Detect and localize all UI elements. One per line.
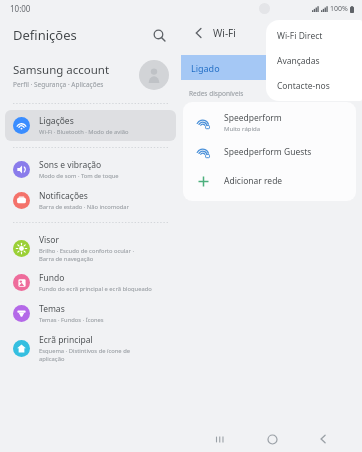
button[interactable]: Fundo <box>5 267 176 298</box>
staticText: Sons e vibração <box>39 159 102 171</box>
staticText: Visor <box>39 234 60 246</box>
button[interactable]: Speedperform Guests <box>183 137 356 166</box>
staticText: Definições <box>13 26 77 44</box>
staticText: Wi-Fi <box>213 26 236 40</box>
button[interactable]: Search <box>147 23 171 47</box>
button[interactable]: Ligado <box>181 55 357 80</box>
staticText: 10:00 <box>10 3 31 14</box>
staticText: Temas · Fundos · Ícones <box>39 316 104 324</box>
staticText: Ligado <box>191 62 220 74</box>
staticText: Esquema · Distintivos de ícone de <box>39 347 130 355</box>
staticText: Muito rápida <box>224 125 261 133</box>
staticText: Barra de estado · Não incomodar <box>39 203 130 211</box>
staticText: Modo de som · Tom de toque <box>39 172 119 180</box>
staticText: Notificações <box>39 190 88 202</box>
staticText: Avançadas <box>277 55 320 67</box>
staticText: Speedperform Guests <box>224 146 312 158</box>
button[interactable]: Ecrã principal <box>5 329 176 367</box>
button[interactable]: Temas <box>5 298 176 329</box>
staticText: Speedperform <box>224 112 282 124</box>
button[interactable]: Home <box>259 426 285 452</box>
button[interactable]: Visor <box>5 229 176 267</box>
staticText: Wi-Fi · Bluetooth · Modo de avião <box>39 128 129 136</box>
button[interactable]: Wi-Fi Direct <box>266 23 362 48</box>
staticText: aplicação <box>39 355 65 363</box>
button[interactable]: Speedperform <box>183 108 356 137</box>
button[interactable]: Avançadas <box>266 48 362 73</box>
staticText: Wi-Fi Direct <box>277 30 323 42</box>
button[interactable]: Samsung account <box>0 53 181 97</box>
button[interactable]: Contacte-nos <box>266 73 362 98</box>
staticText: Samsung account <box>13 62 110 78</box>
staticText: Redes disponíveis <box>189 89 244 98</box>
staticText: Adicionar rede <box>224 175 283 187</box>
button[interactable]: Sons e vibração <box>5 154 176 185</box>
staticText: 100% <box>330 4 348 14</box>
staticText: Perfil · Segurança · Aplicações <box>13 80 104 89</box>
button[interactable]: Recent apps <box>207 426 233 452</box>
button[interactable]: Adicionar rede <box>183 166 356 195</box>
staticText: Brilho · Escudo de conforto ocular · <box>39 247 135 255</box>
staticText: Contacte-nos <box>277 80 330 92</box>
button[interactable]: Notificações <box>5 185 176 216</box>
staticText: Temas <box>39 303 65 315</box>
button[interactable]: Ligações <box>5 110 176 141</box>
staticText: Fundo <box>39 272 65 284</box>
button[interactable]: Back <box>310 426 336 452</box>
staticText: Barra de navegação <box>39 255 94 263</box>
staticText: Ecrã principal <box>39 334 93 346</box>
staticText: Fundo do ecrã principal e ecrã bloqueado <box>39 285 152 293</box>
button[interactable]: Back <box>187 22 209 44</box>
staticText: Ligações <box>39 115 74 127</box>
